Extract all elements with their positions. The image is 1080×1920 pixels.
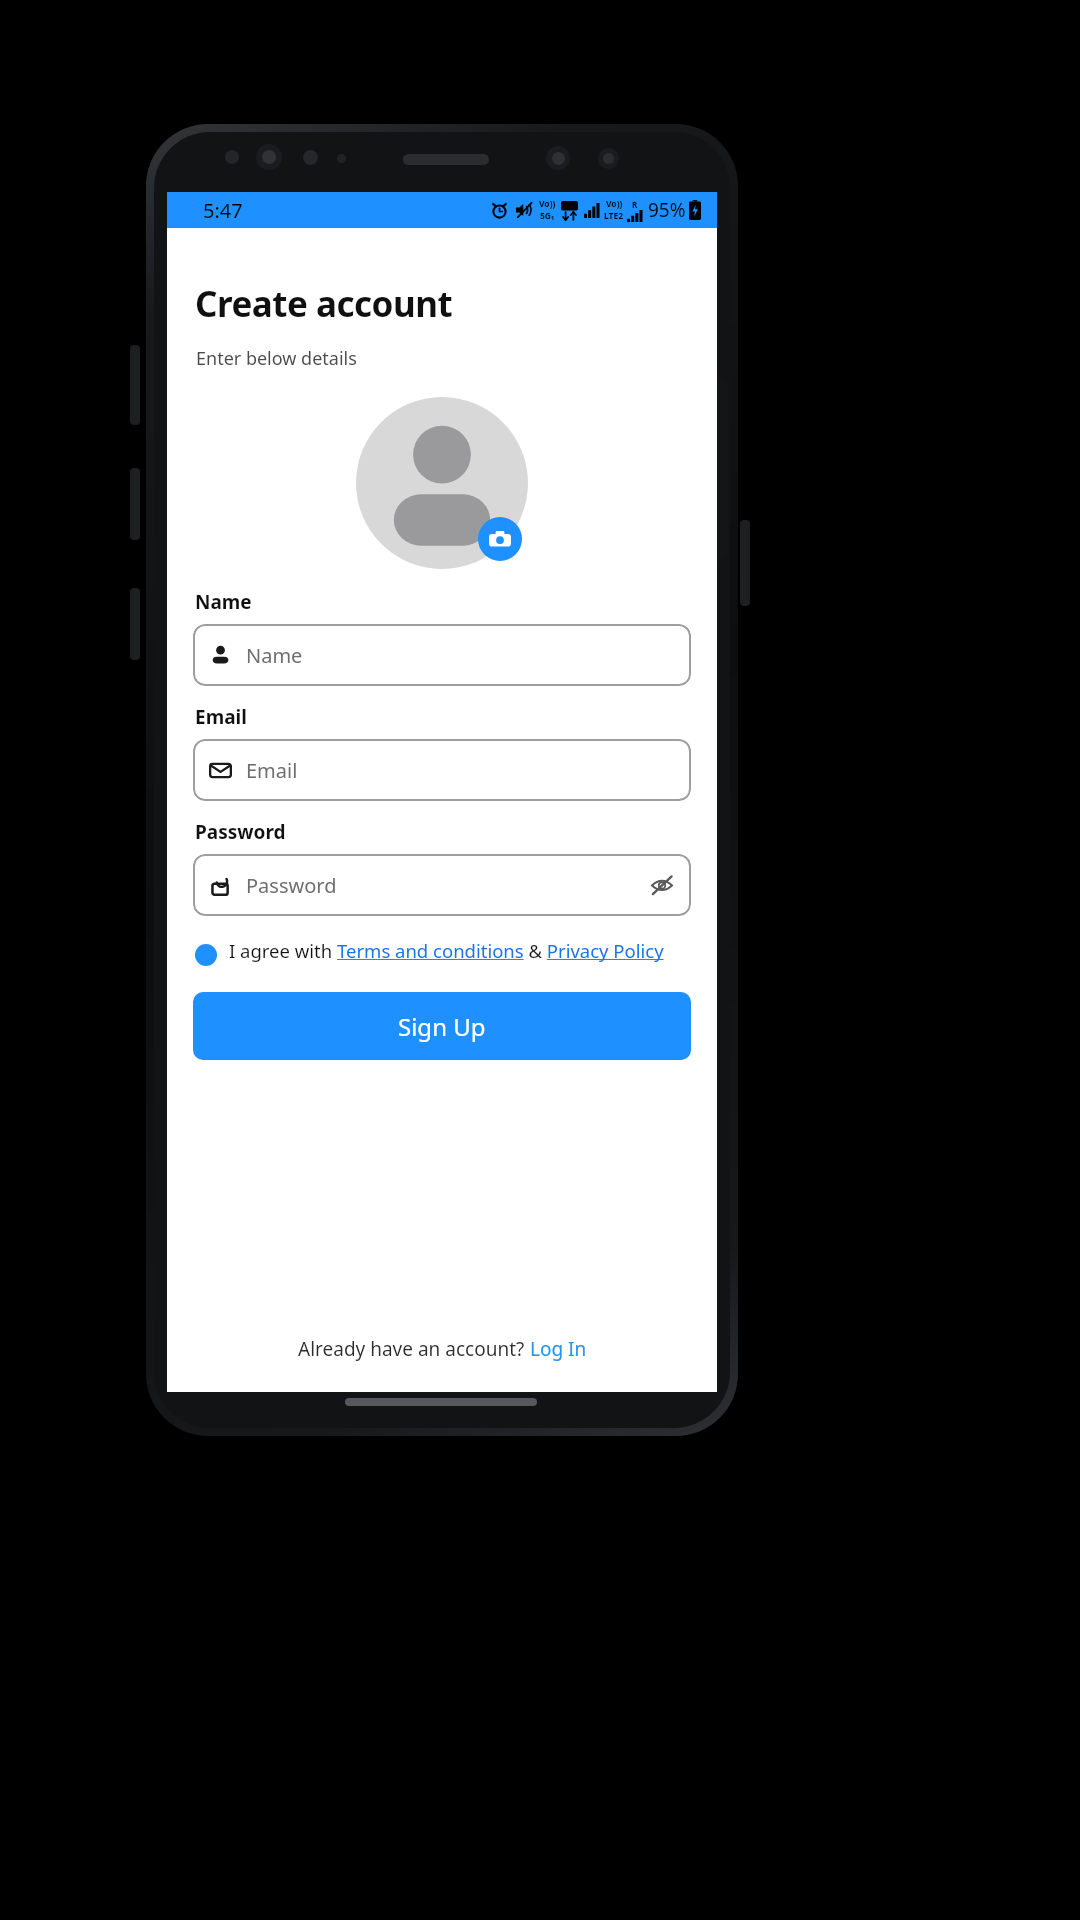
staticText: 5G₁ — [540, 210, 555, 222]
staticText: Enter below details — [196, 346, 357, 371]
staticText: 5:47 — [203, 197, 243, 224]
staticText: R — [632, 199, 638, 210]
button[interactable]: Show password — [649, 872, 675, 898]
button[interactable]: Name — [193, 624, 691, 686]
staticText: Name — [195, 589, 252, 615]
staticText: Vo)) — [606, 198, 623, 210]
staticText: Email — [246, 757, 675, 784]
staticText: Name — [246, 642, 675, 669]
staticText: Log In — [530, 1336, 587, 1362]
staticText: 95% — [648, 197, 686, 223]
button[interactable]: Change photo — [478, 517, 522, 561]
staticText: LTE2 — [604, 210, 624, 222]
staticText: Password — [195, 819, 286, 845]
staticText: Sign Up — [398, 1010, 486, 1043]
button[interactable]: I agree with Terms and conditions & Priv… — [193, 938, 691, 966]
staticText: I agree with Terms and conditions & Priv… — [229, 938, 664, 963]
staticText: Create account — [195, 280, 453, 328]
button[interactable]: Sign Up — [193, 992, 691, 1060]
button[interactable]: Email — [193, 739, 691, 801]
staticText: Already have an account? — [298, 1336, 530, 1362]
button[interactable]: Profile photo — [356, 397, 528, 569]
staticText: Password — [246, 872, 649, 899]
staticText: Vo)) — [539, 198, 556, 210]
staticText: Email — [195, 704, 247, 730]
button[interactable]: Password — [193, 854, 691, 916]
button[interactable]: Log In — [530, 1336, 587, 1362]
